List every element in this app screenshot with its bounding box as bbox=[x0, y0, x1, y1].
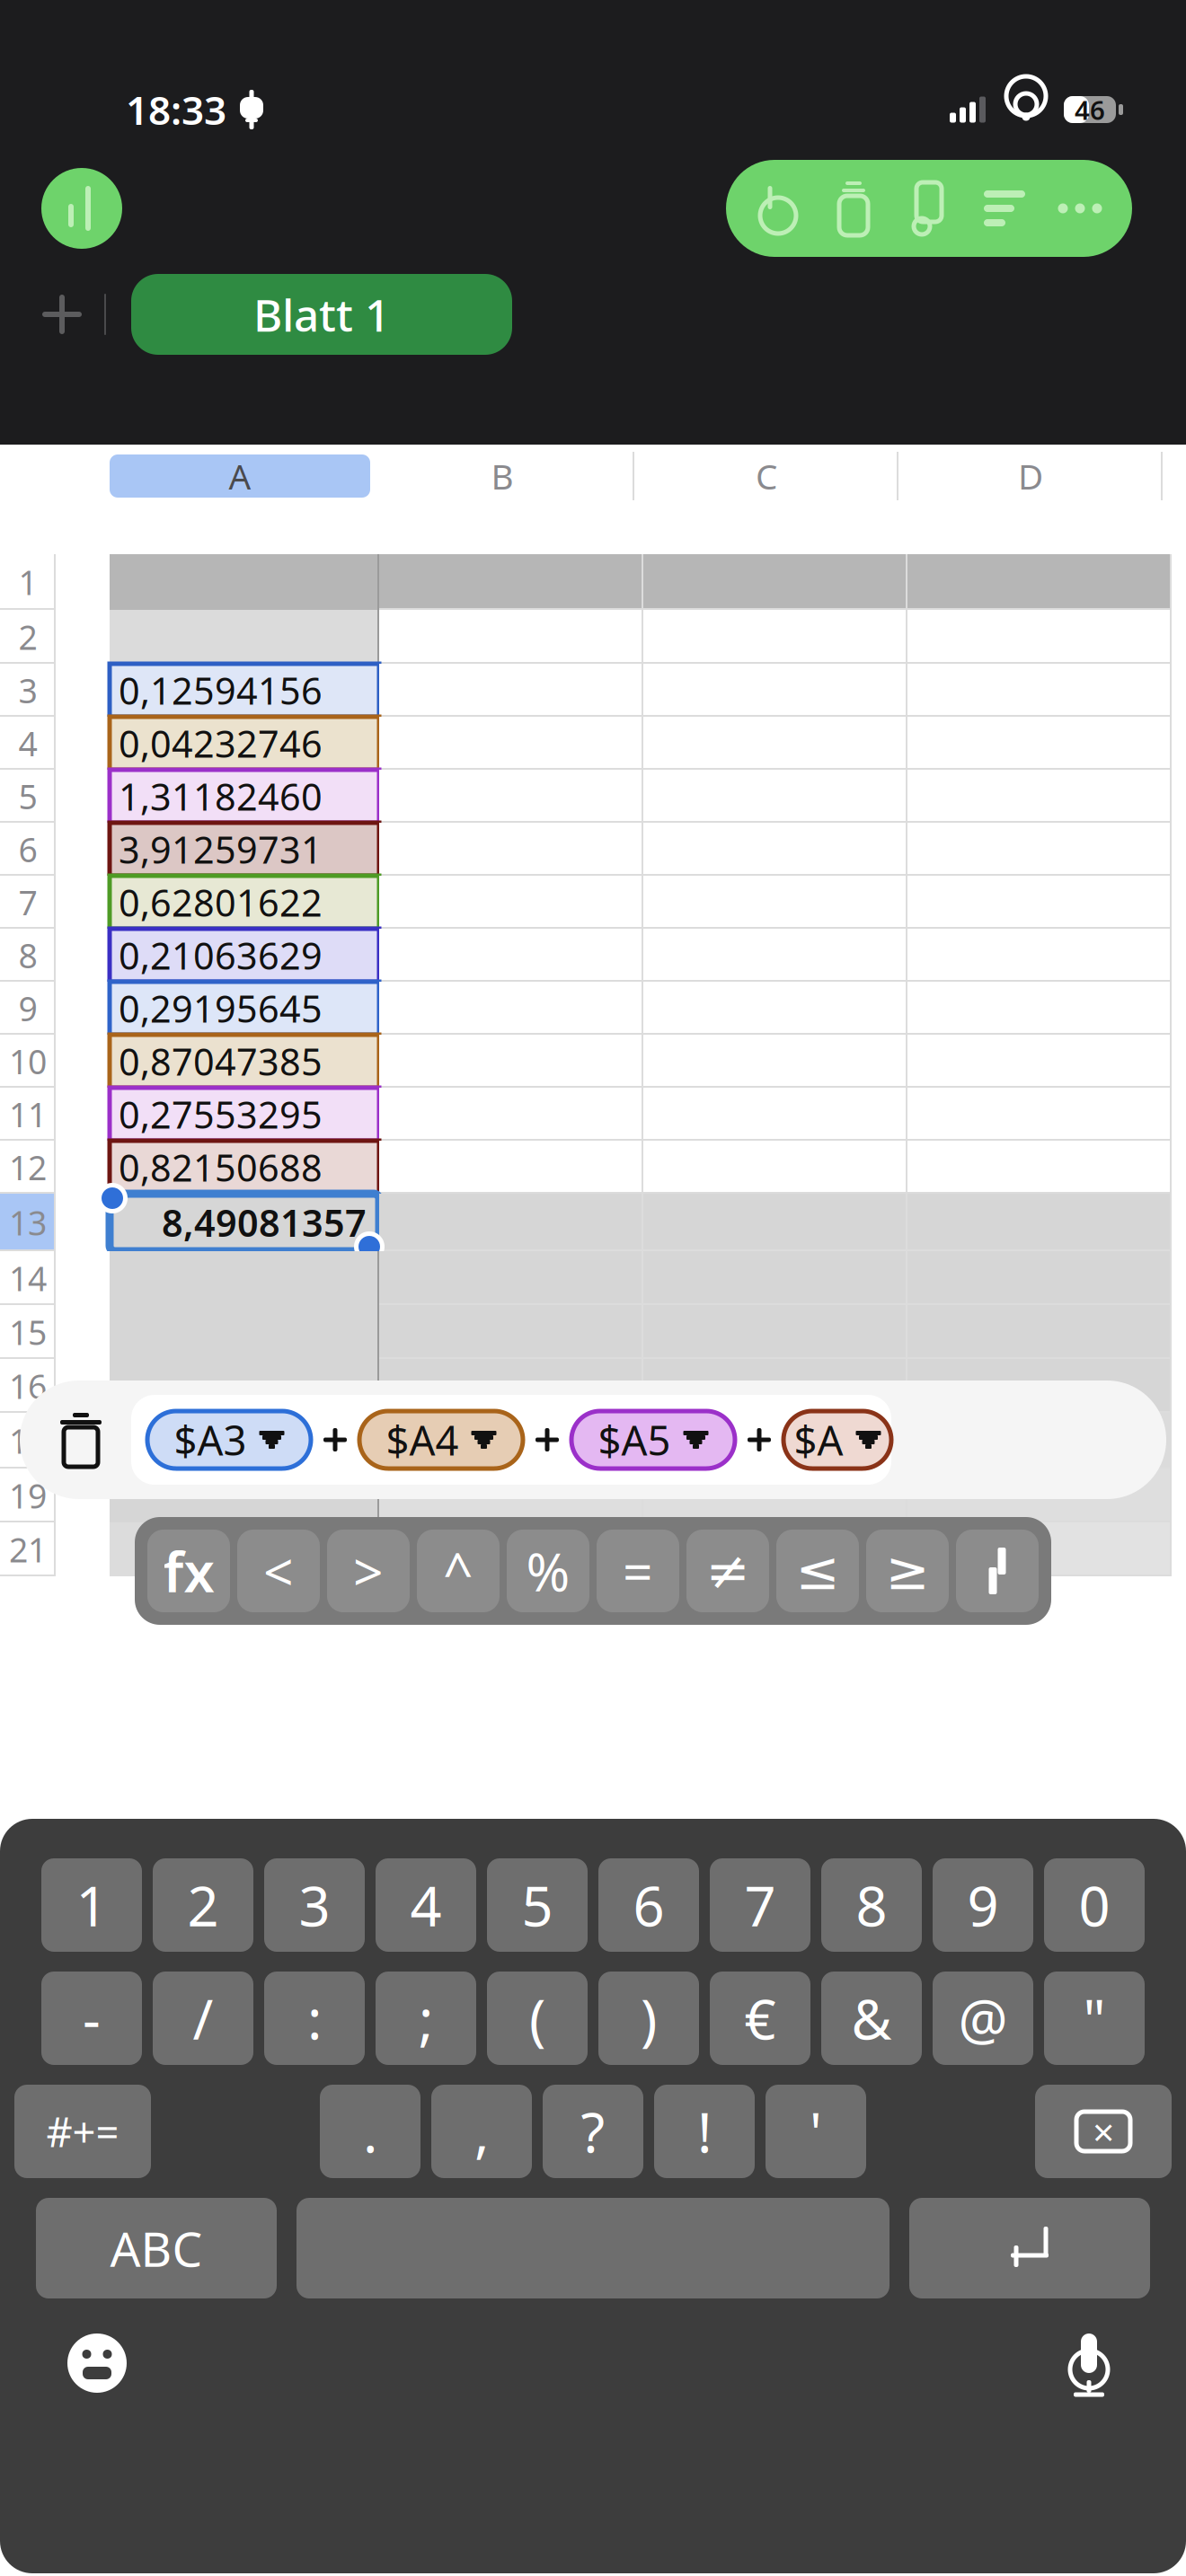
staticText: 14 bbox=[9, 1256, 47, 1300]
staticText: $A bbox=[794, 1413, 843, 1467]
button[interactable]: ABC bbox=[36, 2198, 277, 2298]
staticText: ≠ bbox=[706, 1541, 750, 1601]
button[interactable]: Add sheet bbox=[20, 272, 104, 357]
staticText: , bbox=[474, 2095, 489, 2168]
staticText: 3,91259731 bbox=[119, 825, 323, 874]
staticText: 18:33 bbox=[126, 83, 226, 136]
staticText: 8 bbox=[856, 1868, 887, 1942]
button[interactable]: 3 bbox=[264, 1858, 365, 1952]
staticText: < bbox=[263, 1536, 294, 1606]
button[interactable]: Done bbox=[41, 168, 122, 249]
button[interactable]: D bbox=[898, 452, 1163, 500]
staticText: 18 bbox=[9, 1418, 47, 1463]
staticText: #+= bbox=[46, 2104, 119, 2158]
staticText: 9 bbox=[18, 986, 37, 1030]
button[interactable]: ' bbox=[766, 2085, 866, 2178]
staticText: 13 bbox=[9, 1200, 47, 1245]
button[interactable]: ( bbox=[487, 1972, 588, 2065]
button[interactable]: > bbox=[327, 1530, 410, 1612]
button[interactable]: Dictate bbox=[1048, 2322, 1130, 2404]
staticText: 6 bbox=[18, 827, 37, 872]
staticText: 2 bbox=[18, 615, 37, 659]
button[interactable]: 1 bbox=[41, 1858, 142, 1952]
staticText: ^ bbox=[443, 1536, 474, 1606]
button[interactable]: C bbox=[634, 452, 898, 500]
button[interactable]: Return bbox=[909, 2198, 1150, 2298]
staticText: ' bbox=[810, 2095, 822, 2168]
button[interactable]: . bbox=[320, 2085, 420, 2178]
button[interactable]: = bbox=[597, 1530, 679, 1612]
staticText: ≤ bbox=[796, 1541, 840, 1601]
button[interactable]: 2 bbox=[153, 1858, 253, 1952]
button[interactable]: / bbox=[153, 1972, 253, 2065]
button[interactable]: 6 bbox=[598, 1858, 699, 1952]
button[interactable]: ^ bbox=[417, 1530, 500, 1612]
staticText: / bbox=[193, 1982, 213, 2055]
button[interactable]: Undo bbox=[740, 166, 816, 251]
staticText: @ bbox=[958, 1982, 1008, 2055]
button[interactable]: % bbox=[507, 1530, 589, 1612]
staticText: B bbox=[491, 453, 513, 499]
button[interactable]: fx bbox=[147, 1530, 230, 1612]
staticText: D bbox=[1018, 453, 1043, 499]
button[interactable]: @ bbox=[933, 1972, 1033, 2065]
button[interactable]: , bbox=[431, 2085, 532, 2178]
button[interactable]: ≤ bbox=[776, 1530, 859, 1612]
button[interactable]: Format brush bbox=[891, 166, 967, 251]
staticText: 0 bbox=[1079, 1868, 1110, 1942]
staticText: 0,87047385 bbox=[119, 1037, 323, 1086]
staticText: 0,27553295 bbox=[119, 1090, 323, 1139]
button[interactable]: More bbox=[1042, 166, 1118, 251]
button[interactable]: " bbox=[1044, 1972, 1145, 2065]
staticText: € bbox=[744, 1982, 776, 2055]
button[interactable]: $A3 bbox=[147, 1411, 311, 1469]
button[interactable]: Text format bbox=[967, 166, 1042, 251]
button[interactable]: & bbox=[821, 1972, 922, 2065]
button[interactable]: : bbox=[264, 1972, 365, 2065]
staticText: Blatt 1 bbox=[253, 285, 390, 344]
button[interactable]: Emoji bbox=[56, 2322, 138, 2404]
staticText: 10 bbox=[9, 1039, 47, 1083]
button[interactable]: ; bbox=[376, 1972, 476, 2065]
button[interactable]: ≠ bbox=[686, 1530, 769, 1612]
staticText: 8 bbox=[18, 933, 37, 977]
staticText: 1 bbox=[76, 1868, 107, 1942]
staticText: A bbox=[229, 453, 251, 499]
button[interactable]: B bbox=[370, 452, 634, 500]
staticText: ≥ bbox=[885, 1541, 929, 1601]
button[interactable]: < bbox=[237, 1530, 320, 1612]
button[interactable]: ) bbox=[598, 1972, 699, 2065]
button[interactable]: 0 bbox=[1044, 1858, 1145, 1952]
button[interactable]: ! bbox=[654, 2085, 755, 2178]
button[interactable]: $A bbox=[783, 1411, 891, 1469]
button[interactable]: Blatt 1 bbox=[131, 274, 512, 355]
button[interactable]: 7 bbox=[710, 1858, 810, 1952]
staticText: 0,82150688 bbox=[119, 1143, 323, 1192]
staticText: 15 bbox=[9, 1310, 47, 1354]
staticText: ; bbox=[419, 1982, 433, 2055]
staticText: $A5 bbox=[598, 1413, 671, 1467]
staticText: C bbox=[756, 453, 777, 499]
button[interactable]: ? bbox=[543, 2085, 643, 2178]
staticText: 0,12594156 bbox=[119, 666, 323, 715]
button[interactable]: 9 bbox=[933, 1858, 1033, 1952]
button[interactable]: 8 bbox=[821, 1858, 922, 1952]
button[interactable]: #+= bbox=[14, 2085, 151, 2178]
button[interactable]: 5 bbox=[487, 1858, 588, 1952]
button[interactable]: ≥ bbox=[866, 1530, 949, 1612]
button[interactable]: Delete bbox=[1035, 2085, 1172, 2178]
button[interactable]: A bbox=[110, 454, 370, 498]
staticText: 11 bbox=[9, 1092, 47, 1136]
staticText: 9 bbox=[967, 1868, 999, 1942]
button[interactable]: 4 bbox=[376, 1858, 476, 1952]
staticText: $A3 bbox=[174, 1413, 247, 1467]
button[interactable]: Quick formulas bbox=[956, 1530, 1039, 1612]
button[interactable]: - bbox=[41, 1972, 142, 2065]
button[interactable]: $A5 bbox=[571, 1411, 735, 1469]
button[interactable]: Delete formula bbox=[43, 1399, 119, 1480]
button[interactable]: $A4 bbox=[359, 1411, 523, 1469]
button[interactable]: € bbox=[710, 1972, 810, 2065]
button[interactable]: Insert bbox=[816, 166, 891, 251]
staticText: 1 bbox=[18, 560, 37, 604]
